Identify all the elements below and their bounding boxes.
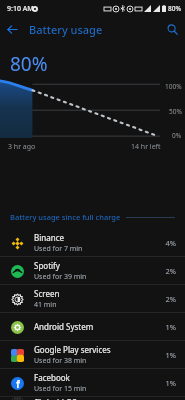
button[interactable]: Google Play services: [0, 341, 185, 368]
staticText: Used for 15 min: [34, 384, 87, 394]
staticText: 9:10 AM: [7, 4, 34, 14]
staticText: 50%: [169, 107, 182, 116]
button[interactable]: Search: [160, 17, 185, 42]
staticText: Used for 39 min: [34, 272, 87, 282]
staticText: 2%: [165, 266, 176, 276]
staticText: 3 hr ago: [8, 142, 36, 152]
button[interactable]: Android System: [0, 313, 185, 340]
button[interactable]: Screen: [0, 285, 185, 312]
staticText: Used for 7 min: [34, 244, 83, 254]
staticText: Google Play services: [34, 344, 111, 355]
staticText: Facebook: [34, 372, 70, 383]
staticText: Battery usage since full charge: [10, 212, 121, 222]
staticText: 80%: [10, 51, 48, 77]
staticText: Android System: [34, 321, 94, 332]
staticText: Battery usage: [29, 22, 103, 37]
staticText: 41 min: [34, 300, 57, 310]
button[interactable]: Binance: [0, 229, 185, 256]
button[interactable]: Android OS: [0, 397, 185, 400]
staticText: Used for 38 min: [34, 356, 87, 366]
staticText: 1%: [165, 350, 176, 360]
staticText: 80%: [168, 4, 181, 13]
staticText: Android OS: [34, 397, 77, 400]
staticText: 4%: [165, 238, 176, 248]
staticText: 2%: [165, 294, 176, 304]
staticText: 1%: [165, 378, 176, 388]
staticText: 1%: [165, 322, 176, 332]
button[interactable]: f: [0, 369, 185, 396]
staticText: Binance: [34, 232, 64, 243]
staticText: Spotify: [34, 260, 60, 271]
staticText: 0%: [172, 131, 182, 140]
button[interactable]: Back: [0, 17, 25, 42]
staticText: Screen: [34, 288, 60, 299]
staticText: 100%: [165, 82, 182, 91]
button[interactable]: Spotify: [0, 257, 185, 284]
staticText: f: [16, 377, 20, 390]
staticText: 14 hr left: [131, 142, 161, 152]
